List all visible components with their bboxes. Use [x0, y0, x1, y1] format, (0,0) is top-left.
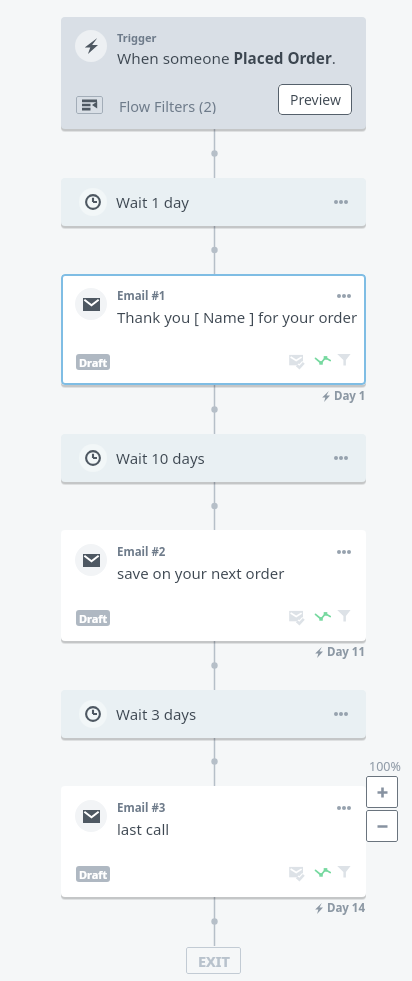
button[interactable]: Email #3	[61, 786, 366, 897]
button[interactable]: Filter	[335, 608, 353, 624]
staticText: last call	[117, 819, 170, 839]
button[interactable]: Sent emails	[287, 608, 307, 628]
staticText: Day 1	[334, 388, 366, 404]
button[interactable]: Flow Filters (2)	[119, 96, 217, 114]
staticText: save on your next order	[117, 563, 285, 583]
button[interactable]: More options	[331, 796, 357, 820]
button[interactable]: Filter	[335, 864, 353, 880]
staticText: Email #2	[117, 544, 166, 560]
button[interactable]: Sent emails	[287, 352, 307, 372]
staticText: Draft	[79, 611, 108, 626]
button[interactable]: Filter	[335, 352, 353, 368]
button[interactable]: More options	[328, 446, 354, 470]
staticText: Trigger	[117, 30, 157, 45]
button[interactable]: More options	[328, 702, 354, 726]
button[interactable]: Zoom in	[366, 776, 398, 808]
staticText: EXIT	[198, 951, 230, 971]
staticText: Preview	[290, 90, 341, 109]
button[interactable]: More options	[331, 284, 357, 308]
staticText: When someone Placed Order.	[117, 48, 336, 69]
button[interactable]: Wait 3 days	[61, 690, 366, 738]
button[interactable]: Preview	[278, 84, 352, 115]
button[interactable]: More options	[328, 190, 354, 214]
button[interactable]: Draft	[76, 610, 110, 626]
staticText: Day 11	[327, 644, 366, 660]
button[interactable]: Email #2	[61, 530, 366, 641]
button[interactable]: Wait 10 days	[61, 434, 366, 482]
staticText: Day 14	[327, 900, 366, 916]
button[interactable]: Email #1	[61, 274, 366, 385]
staticText: Wait 10 days	[116, 448, 205, 468]
button[interactable]: Analytics	[314, 865, 333, 881]
staticText: Wait 1 day	[116, 192, 190, 212]
staticText: 100%	[369, 758, 401, 775]
button[interactable]: Flow filters	[76, 96, 103, 114]
button[interactable]: Wait 1 day	[61, 178, 366, 226]
button[interactable]: Analytics	[314, 609, 333, 625]
button[interactable]: Trigger	[61, 17, 366, 129]
staticText: Thank you [ Name ] for your order	[117, 307, 358, 327]
button[interactable]: EXIT	[186, 947, 241, 974]
button[interactable]: More options	[331, 540, 357, 564]
button[interactable]: Analytics	[314, 353, 333, 369]
button[interactable]: Sent emails	[287, 864, 307, 884]
staticText: Wait 3 days	[116, 704, 197, 724]
staticText: Email #1	[117, 288, 166, 304]
button[interactable]: Zoom out	[366, 810, 398, 842]
button[interactable]: Draft	[76, 866, 110, 882]
staticText: Draft	[79, 867, 108, 882]
staticText: Email #3	[117, 800, 166, 816]
button[interactable]: Draft	[76, 354, 110, 370]
staticText: Draft	[79, 355, 108, 370]
